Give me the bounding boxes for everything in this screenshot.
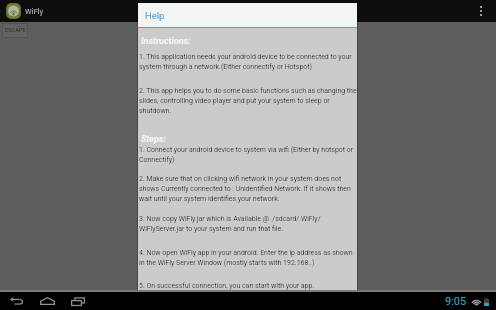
staticText: 2. This app helps you to do some basic f… bbox=[139, 87, 357, 114]
staticText: 9:05 bbox=[445, 295, 467, 308]
staticText: 3. Now copy WiFly.jar which is Available… bbox=[139, 215, 357, 232]
staticText: Steps: bbox=[141, 134, 166, 145]
button[interactable]: ESCAPE bbox=[2, 23, 28, 38]
staticText: 1. Connect your android device to system… bbox=[139, 146, 357, 163]
staticText: 5. On successful connection, you can sta… bbox=[139, 282, 357, 290]
staticText: WiFly bbox=[25, 7, 44, 16]
staticText: Instructions: bbox=[141, 36, 191, 47]
staticText: ESCAPE bbox=[5, 27, 26, 34]
staticText: 2. Make sure that on clicking wifi netwo… bbox=[139, 175, 357, 202]
button[interactable]: More options bbox=[471, 0, 491, 22]
button[interactable]: Back bbox=[5, 292, 27, 310]
button[interactable]: Home bbox=[36, 292, 58, 310]
staticText: 1. This application needs your android d… bbox=[139, 53, 357, 70]
button[interactable]: Recent apps bbox=[67, 292, 89, 310]
staticText: Help bbox=[145, 10, 165, 21]
staticText: 4. Now open WiFly app in your android. E… bbox=[139, 249, 357, 266]
